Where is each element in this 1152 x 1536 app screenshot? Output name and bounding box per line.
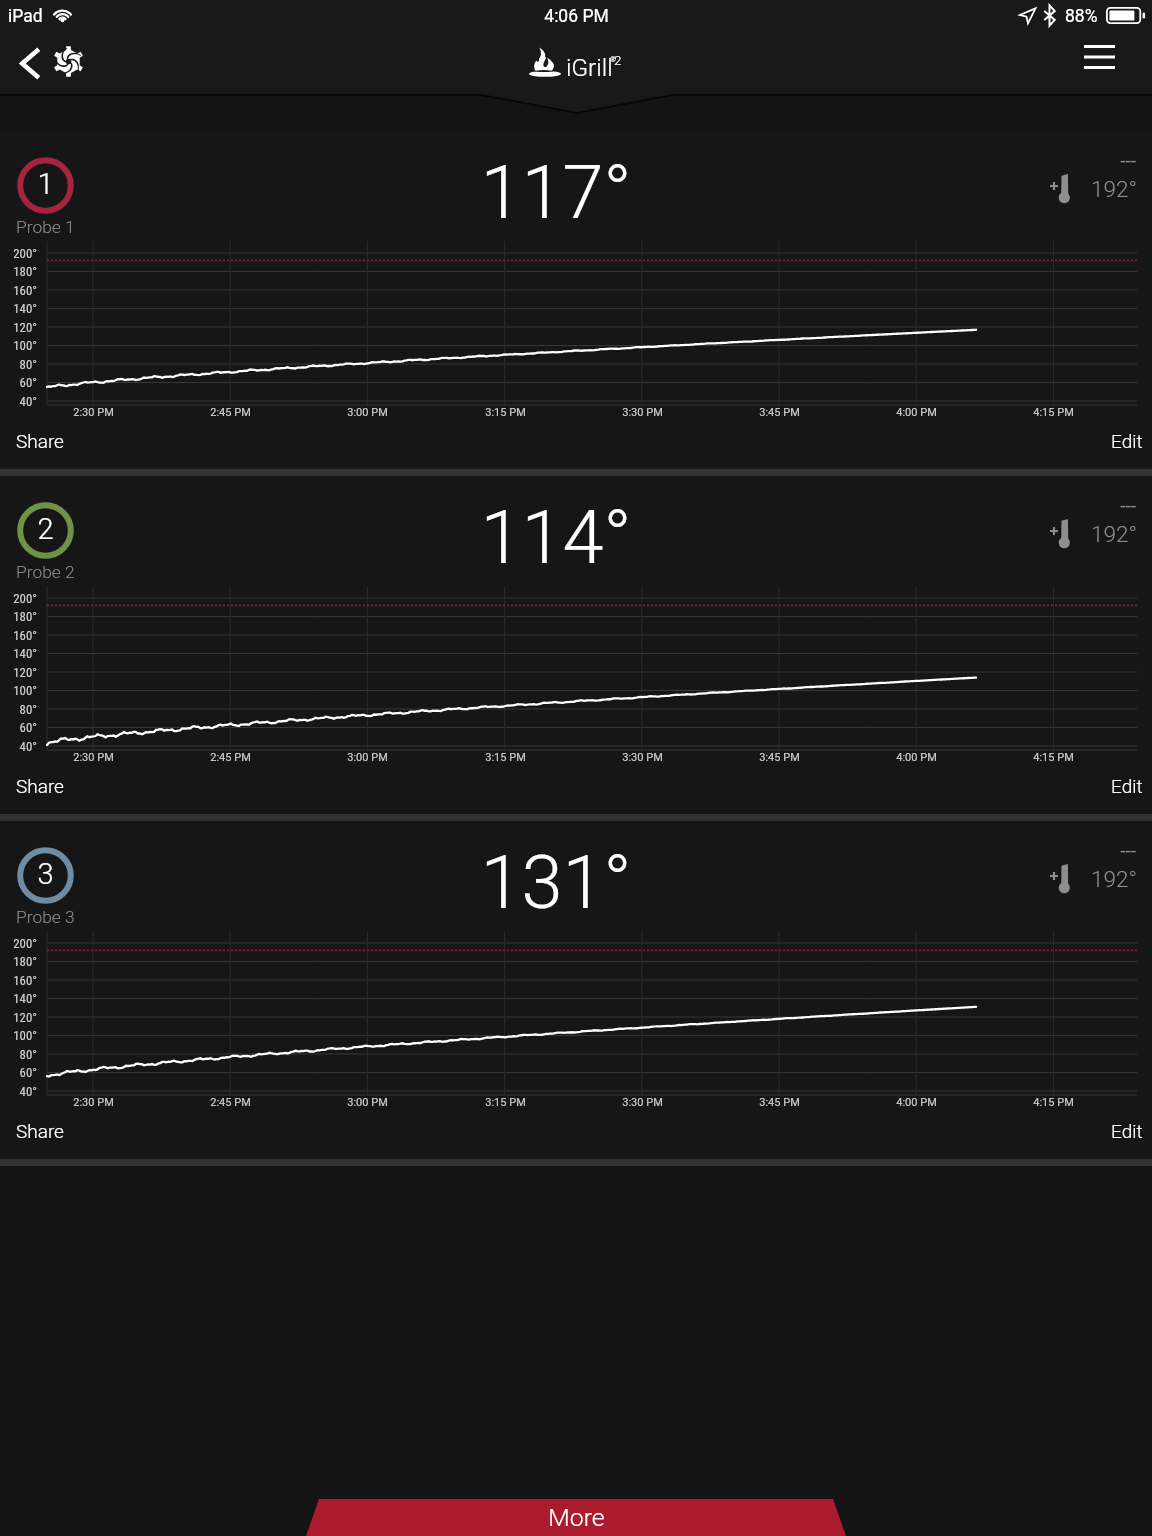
staticText: 3:30 PM <box>622 406 663 419</box>
staticText: 3 <box>37 857 54 891</box>
staticText: 2:45 PM <box>210 751 251 764</box>
staticText: 3:30 PM <box>622 751 663 764</box>
staticText: 4:15 PM <box>1033 406 1074 419</box>
staticText: 4:00 PM <box>896 751 937 764</box>
staticText: 4:00 PM <box>896 406 937 419</box>
staticText: 60° <box>19 1065 37 1080</box>
button[interactable]: Share <box>16 1120 64 1142</box>
staticText: 120° <box>13 320 37 335</box>
staticText: Share <box>16 775 64 797</box>
staticText: 2:30 PM <box>73 751 114 764</box>
staticText: --- <box>1120 839 1136 861</box>
staticText: 180° <box>13 954 37 969</box>
button[interactable]: Edit <box>1111 430 1143 452</box>
staticText: 192° <box>1091 866 1137 892</box>
staticText: 140° <box>13 991 37 1006</box>
staticText: 140° <box>13 301 37 316</box>
staticText: 3:15 PM <box>485 1096 526 1109</box>
staticText: 3:15 PM <box>485 406 526 419</box>
staticText: 100° <box>13 683 37 698</box>
staticText: 120° <box>13 1010 37 1025</box>
staticText: 120° <box>13 665 37 680</box>
staticText: 160° <box>13 628 37 643</box>
staticText: --- <box>1120 494 1136 516</box>
staticText: 4:15 PM <box>1033 751 1074 764</box>
button[interactable]: 3 <box>0 821 1152 1159</box>
staticText: 117° <box>480 149 632 236</box>
staticText: 3:00 PM <box>347 406 388 419</box>
staticText: 180° <box>13 264 37 279</box>
staticText: 100° <box>13 1028 37 1043</box>
button[interactable]: Edit <box>1111 775 1143 797</box>
staticText: 1 <box>37 167 54 201</box>
staticText: 2 <box>614 52 622 68</box>
button[interactable]: Edit <box>1111 1120 1143 1142</box>
staticText: 80° <box>19 702 37 717</box>
staticText: Probe 1 <box>16 217 75 237</box>
staticText: 4:06 PM <box>544 6 609 27</box>
staticText: 180° <box>13 609 37 624</box>
staticText: --- <box>1120 149 1136 171</box>
staticText: 3:45 PM <box>759 1096 800 1109</box>
staticText: iGrill <box>566 53 613 81</box>
staticText: 3:15 PM <box>485 751 526 764</box>
button[interactable]: 2 <box>0 476 1152 814</box>
staticText: 4:00 PM <box>896 1096 937 1109</box>
staticText: 88% <box>1065 6 1098 27</box>
staticText: 3:45 PM <box>759 406 800 419</box>
button[interactable]: More <box>306 1499 846 1536</box>
staticText: 131° <box>480 839 632 926</box>
staticText: 3:45 PM <box>759 751 800 764</box>
staticText: 160° <box>13 283 37 298</box>
button[interactable]: Share <box>16 775 64 797</box>
staticText: 3:00 PM <box>347 751 388 764</box>
staticText: 2 <box>37 512 54 546</box>
staticText: Share <box>16 430 64 452</box>
staticText: 40° <box>19 739 37 754</box>
staticText: ® <box>610 55 616 64</box>
staticText: 3:30 PM <box>622 1096 663 1109</box>
staticText: 2:45 PM <box>210 1096 251 1109</box>
staticText: 80° <box>19 357 37 372</box>
staticText: 80° <box>19 1047 37 1062</box>
staticText: 2:30 PM <box>73 406 114 419</box>
button[interactable]: 1 <box>0 131 1152 469</box>
staticText: 140° <box>13 646 37 661</box>
button[interactable]: Menu <box>1075 33 1123 81</box>
staticText: Edit <box>1111 775 1143 797</box>
staticText: 100° <box>13 338 37 353</box>
staticText: 114° <box>480 494 632 581</box>
staticText: Share <box>16 1120 64 1142</box>
staticText: 160° <box>13 973 37 988</box>
staticText: Probe 3 <box>16 907 75 927</box>
staticText: 60° <box>19 375 37 390</box>
staticText: 40° <box>19 1084 37 1099</box>
staticText: 2:30 PM <box>73 1096 114 1109</box>
staticText: 3:00 PM <box>347 1096 388 1109</box>
staticText: iPad <box>8 6 43 27</box>
staticText: 192° <box>1091 521 1137 547</box>
staticText: 192° <box>1091 176 1137 202</box>
staticText: 2:45 PM <box>210 406 251 419</box>
staticText: 40° <box>19 394 37 409</box>
staticText: 60° <box>19 720 37 735</box>
staticText: Probe 2 <box>16 562 75 582</box>
staticText: 200° <box>13 246 37 261</box>
staticText: Edit <box>1111 1120 1143 1142</box>
button[interactable]: Settings <box>45 38 91 84</box>
staticText: More <box>548 1503 605 1532</box>
staticText: 200° <box>13 936 37 951</box>
staticText: 4:15 PM <box>1033 1096 1074 1109</box>
button[interactable]: Back <box>6 39 54 87</box>
staticText: 200° <box>13 591 37 606</box>
staticText: Edit <box>1111 430 1143 452</box>
button[interactable]: Share <box>16 430 64 452</box>
